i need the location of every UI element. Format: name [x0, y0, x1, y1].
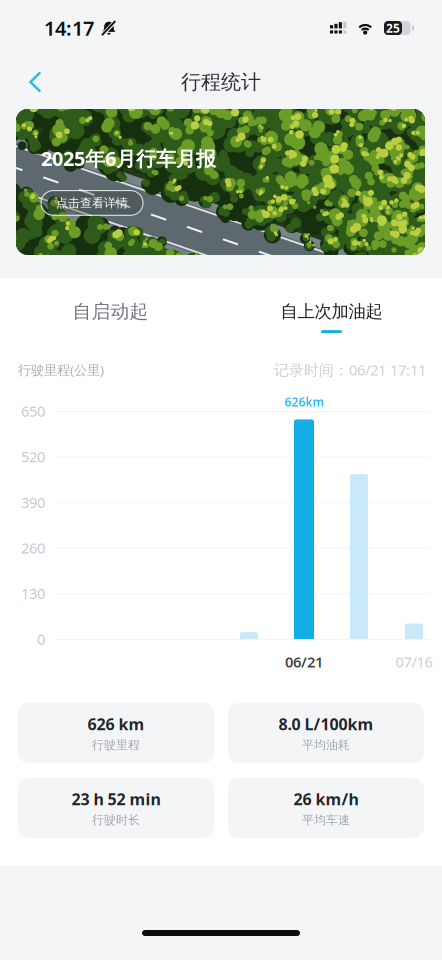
button[interactable]: 2025年6月行车月报: [16, 109, 425, 255]
staticText: 07/16: [395, 652, 432, 671]
staticText: 自上次加油起: [280, 301, 382, 322]
staticText: 520: [21, 447, 45, 466]
button[interactable]: 626 km: [18, 703, 214, 763]
staticText: 行驶时长: [92, 813, 140, 827]
staticText: 平均油耗: [302, 738, 350, 752]
staticText: 行驶里程: [92, 738, 140, 752]
staticText: 25: [386, 20, 400, 36]
button[interactable]: 26 km/h: [228, 778, 424, 838]
button[interactable]: 8.0 L/100km: [228, 703, 424, 763]
staticText: 行程统计: [181, 70, 261, 94]
staticText: 2025年6月行车月报: [41, 145, 216, 172]
staticText: 记录时间：06/21 17:11: [274, 360, 426, 379]
button[interactable]: Back: [12, 60, 58, 104]
staticText: 0: [37, 629, 45, 649]
staticText: 260: [21, 538, 45, 558]
staticText: 26 km/h: [293, 788, 358, 810]
button[interactable]: 自启动起: [0, 297, 221, 337]
staticText: 130: [21, 584, 45, 603]
staticText: 点击查看详情: [56, 196, 128, 210]
staticText: 14:17: [44, 15, 94, 41]
staticText: 8.0 L/100km: [278, 713, 373, 735]
staticText: 自启动起: [72, 300, 148, 323]
staticText: 390: [21, 492, 45, 512]
staticText: 626 km: [87, 713, 144, 735]
staticText: 650: [21, 401, 45, 421]
staticText: 23 h 52 min: [71, 788, 160, 810]
button[interactable]: 23 h 52 min: [18, 778, 214, 838]
staticText: 626km: [284, 394, 323, 410]
button[interactable]: 自上次加油起: [221, 297, 442, 337]
staticText: 平均车速: [302, 813, 350, 827]
staticText: 06/21: [285, 652, 323, 671]
staticText: 行驶里程(公里): [18, 361, 104, 379]
